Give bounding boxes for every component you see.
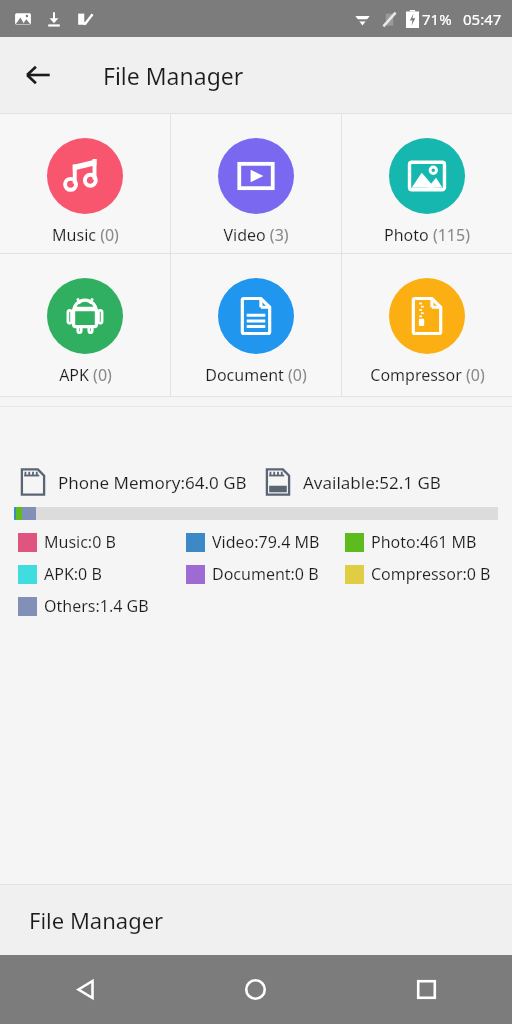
- button[interactable]: Back: [0, 955, 170, 1024]
- button[interactable]: Compressor (0): [342, 254, 512, 396]
- staticText: Others:1.4 GB: [44, 595, 149, 617]
- staticText: File Manager: [29, 905, 164, 935]
- staticText: Music (0): [52, 224, 119, 246]
- staticText: Document (0): [205, 364, 307, 386]
- button[interactable]: Back: [14, 51, 62, 99]
- button[interactable]: Document (0): [171, 254, 341, 396]
- button[interactable]: Photo (115): [342, 114, 512, 253]
- button[interactable]: Home: [170, 955, 341, 1024]
- staticText: Video (3): [223, 224, 289, 246]
- button[interactable]: Music (0): [0, 114, 170, 253]
- staticText: Compressor:0 B: [371, 563, 491, 585]
- staticText: File Manager: [103, 60, 244, 91]
- staticText: 71%: [422, 9, 452, 29]
- staticText: APK:0 B: [44, 563, 102, 585]
- staticText: 05:47: [463, 9, 502, 29]
- staticText: Phone Memory:64.0 GB: [58, 471, 247, 494]
- staticText: Document:0 B: [212, 563, 319, 585]
- staticText: Music:0 B: [44, 531, 116, 553]
- staticText: Photo:461 MB: [371, 531, 477, 553]
- button[interactable]: APK (0): [0, 254, 170, 396]
- button[interactable]: File Manager: [0, 885, 512, 955]
- staticText: Photo (115): [384, 224, 470, 246]
- button[interactable]: Video (3): [171, 114, 341, 253]
- staticText: Video:79.4 MB: [212, 531, 320, 553]
- staticText: Available:52.1 GB: [303, 471, 441, 494]
- staticText: APK (0): [59, 364, 112, 386]
- button[interactable]: Recents: [341, 955, 512, 1024]
- staticText: Compressor (0): [370, 364, 485, 386]
